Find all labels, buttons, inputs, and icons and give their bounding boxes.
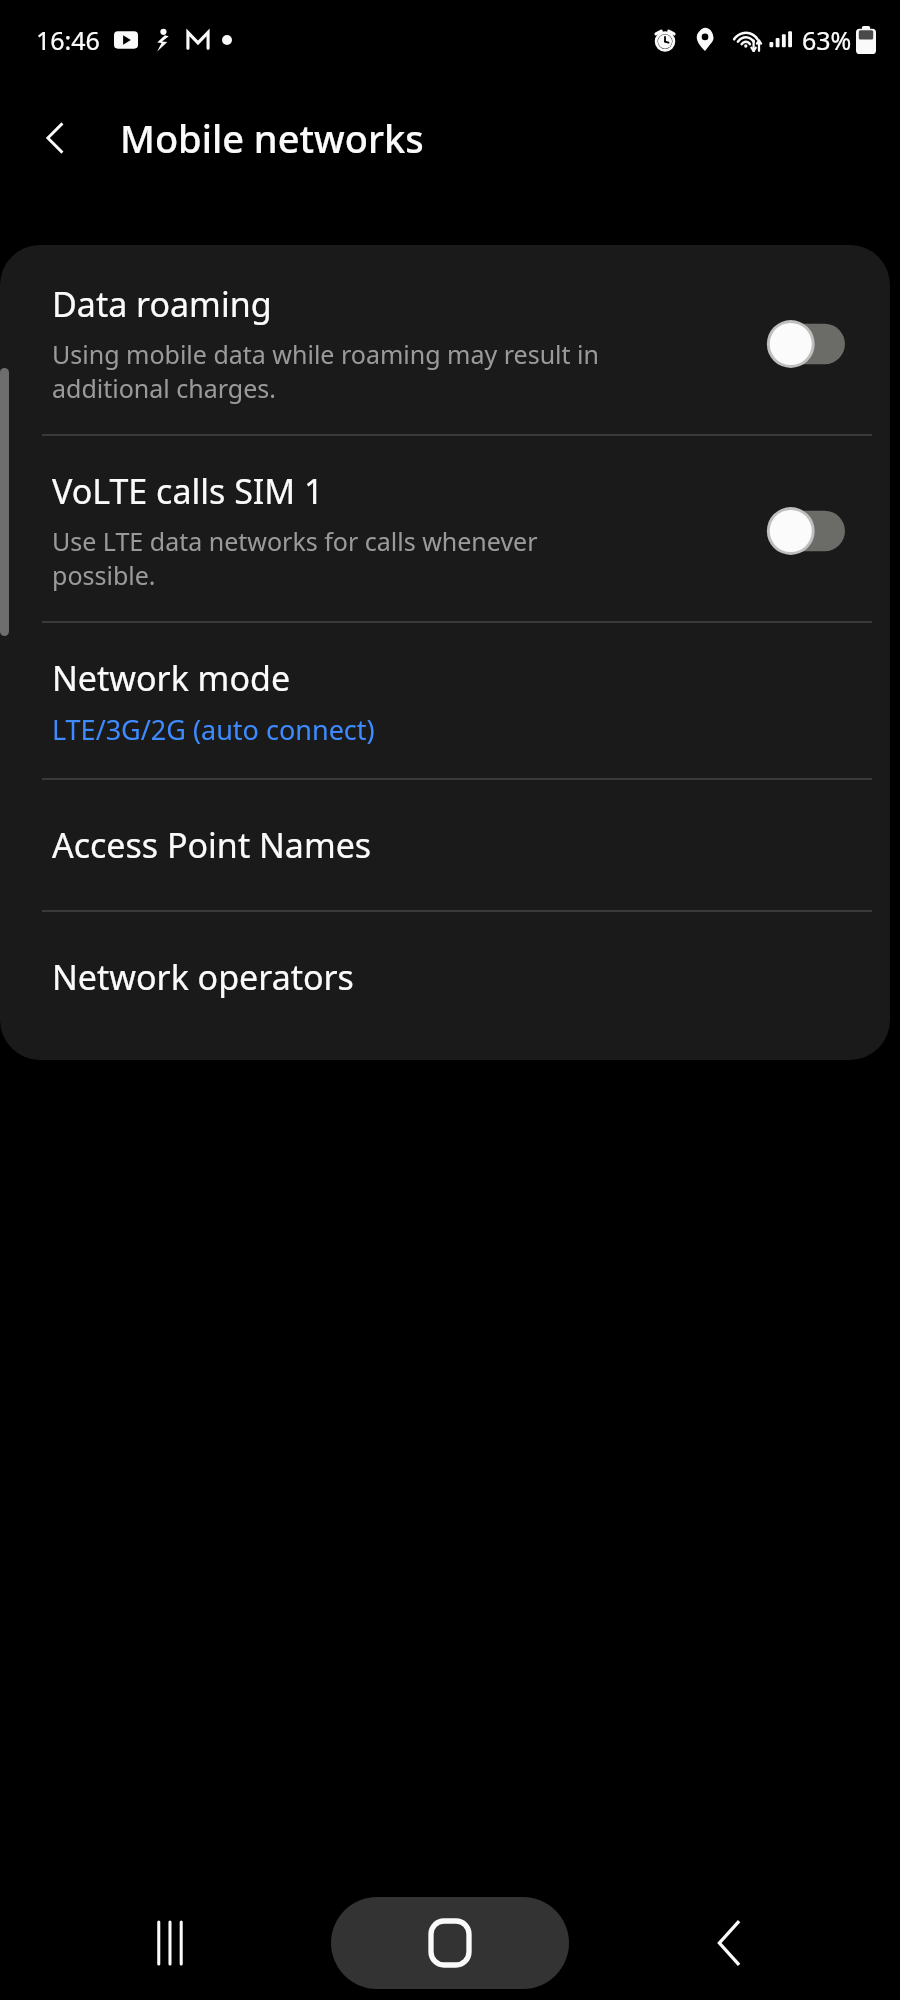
button[interactable]: VoLTE calls SIM 1 [0,436,890,621]
staticText: 16:46 [36,23,100,57]
button[interactable]: Access Point Names [0,780,890,910]
staticText: 63% [802,23,852,57]
staticText: Use LTE data networks for calls whenever… [52,524,538,593]
staticText: Network mode [52,655,291,701]
staticText: Mobile networks [120,112,424,164]
button[interactable]: Recent apps [126,1898,216,1988]
button[interactable]: Network mode [0,623,890,778]
button[interactable]: Toggle [766,318,850,370]
staticText: Network operators [52,954,354,1000]
button[interactable]: Back [24,106,88,170]
staticText: Using mobile data while roaming may resu… [52,337,599,406]
staticText: VoLTE calls SIM 1 [52,468,324,514]
button[interactable]: Home [331,1897,569,1989]
staticText: LTE/3G/2G (auto connect) [52,711,375,748]
button[interactable]: Toggle [766,505,850,557]
button[interactable]: Network operators [0,912,890,1060]
staticText: Access Point Names [52,822,372,868]
staticText: Data roaming [52,281,272,327]
button[interactable]: Data roaming [0,245,890,434]
button[interactable]: Back [684,1898,774,1988]
